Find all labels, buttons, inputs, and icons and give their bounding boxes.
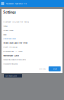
staticText: CANCEL: [39, 67, 46, 70]
staticText: Placeholder — 4759: [3, 50, 22, 52]
staticText: 000: [3, 33, 6, 36]
staticText: Settings: [3, 10, 16, 14]
staticText: International: [3, 37, 16, 40]
staticText: Video Code: [3, 29, 13, 31]
staticText: Keep this choice for next time: [3, 58, 26, 61]
button[interactable]: International: [3, 36, 61, 41]
staticText: Facebook Audience Ne: [6, 2, 27, 5]
staticText: SAVE: [53, 67, 57, 70]
staticText: Video Available For Free: [3, 41, 27, 44]
staticText: Item ID Value: [3, 45, 17, 48]
staticText: Remember Later: [3, 54, 19, 57]
button[interactable]: CANCEL: [38, 66, 47, 71]
staticText: Number ID (see for help): [3, 20, 29, 23]
button[interactable]: SAVE: [49, 66, 61, 71]
staticText: 1234: [3, 24, 7, 27]
staticText: you open this panel.: [3, 62, 18, 65]
button[interactable]: Menu: [1, 0, 4, 7]
staticText: Settings saved: [5, 74, 17, 77]
